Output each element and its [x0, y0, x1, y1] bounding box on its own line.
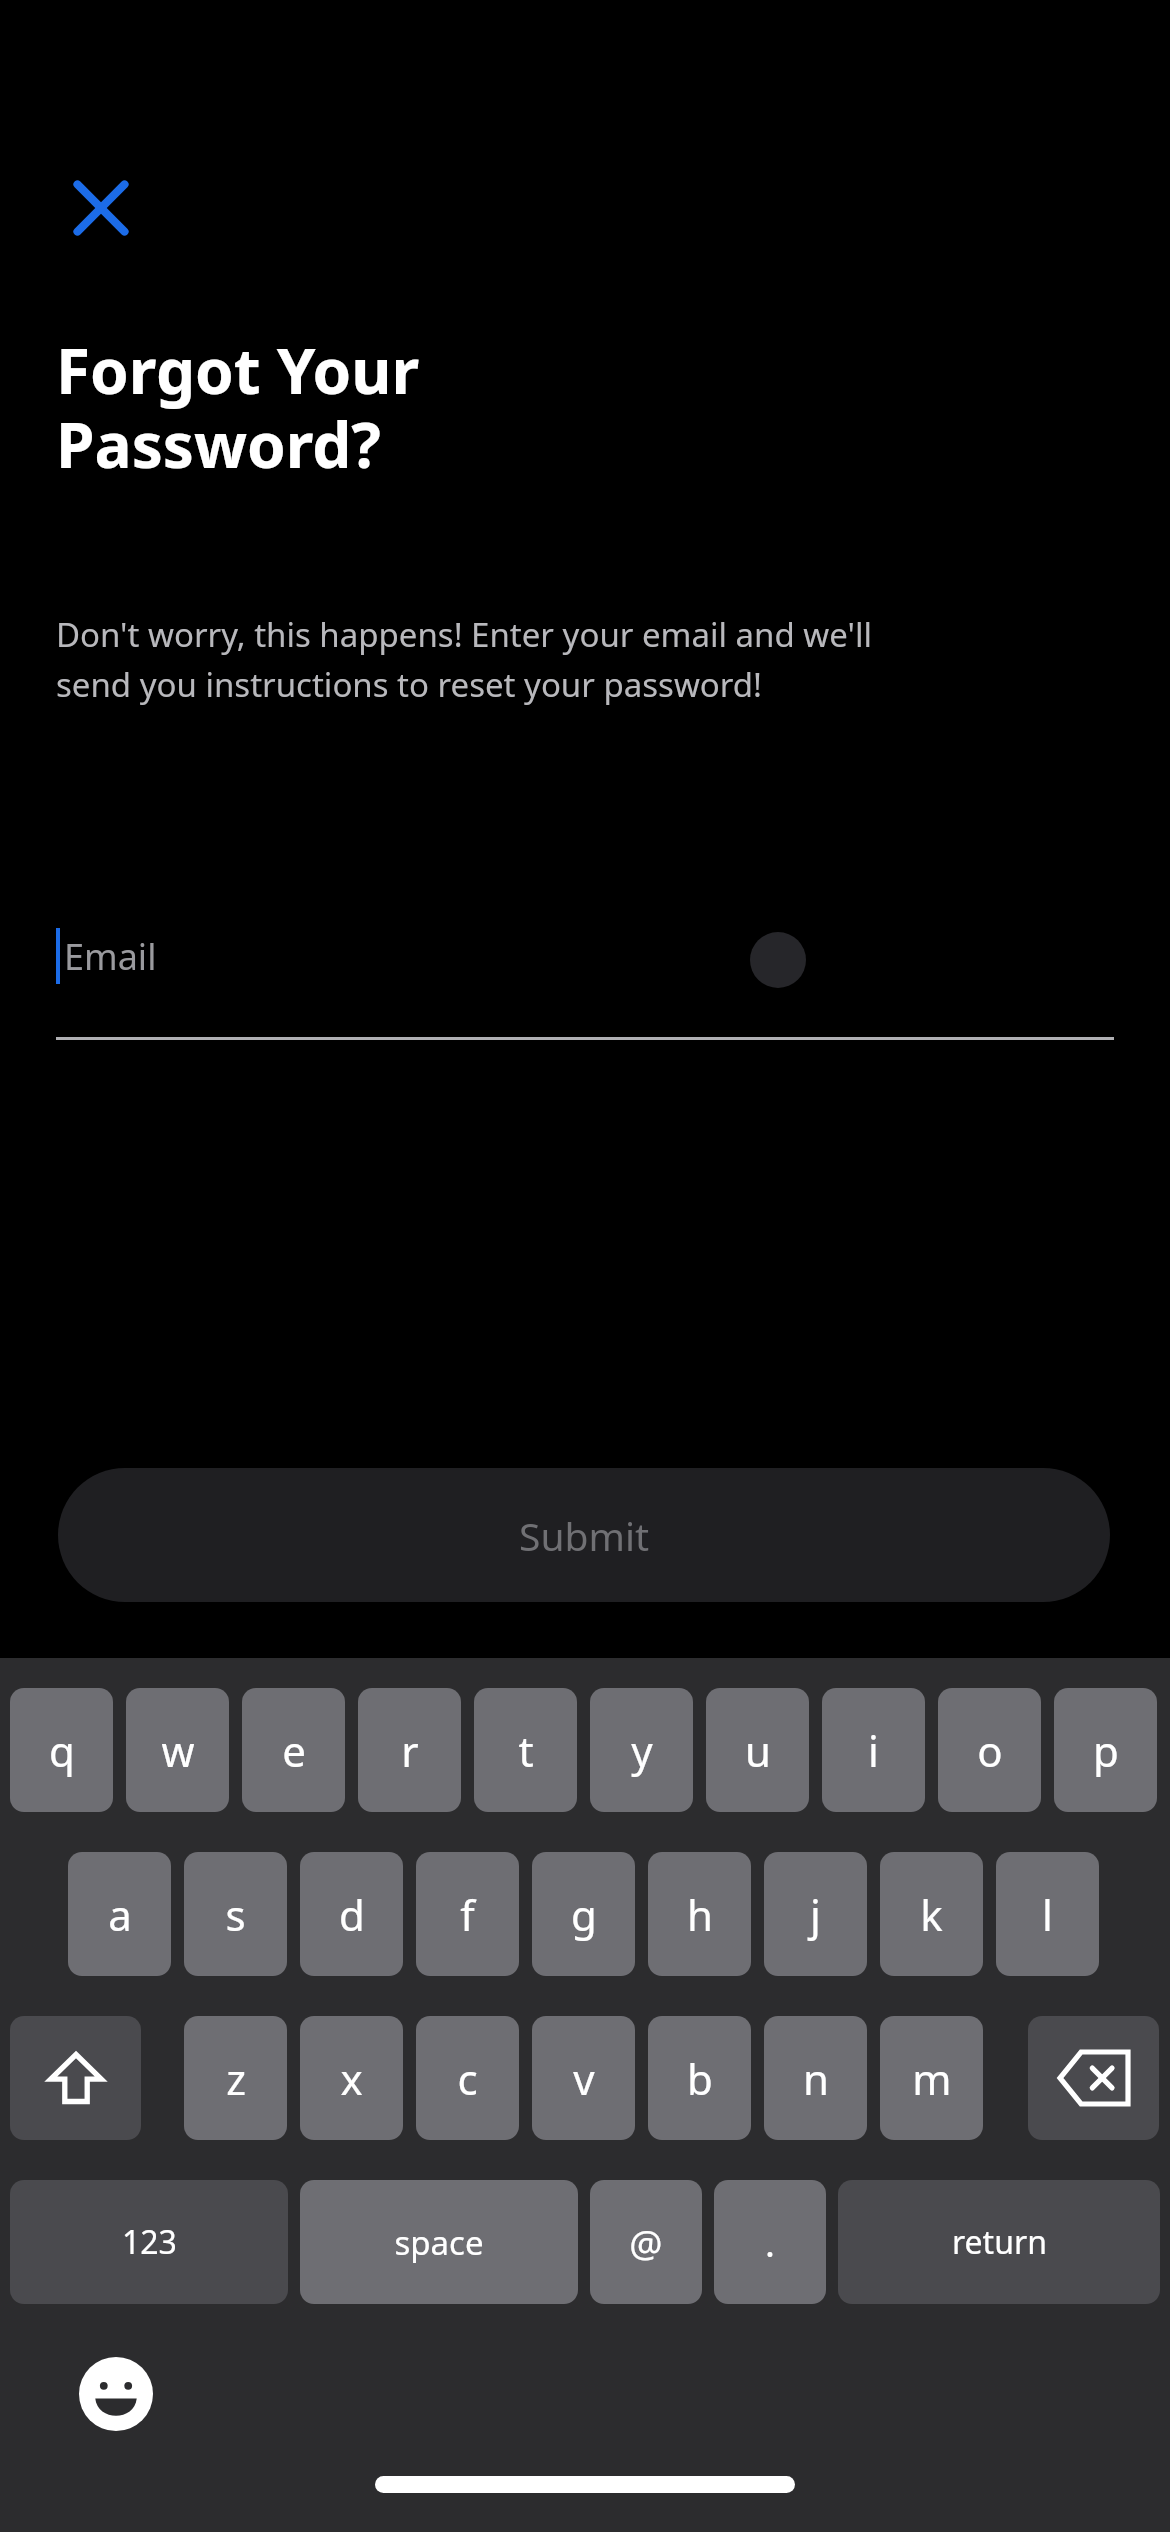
staticText: z — [226, 2050, 246, 2107]
button[interactable]: w — [126, 1688, 229, 1812]
staticText: u — [745, 1722, 771, 1779]
staticText: Submit — [519, 1509, 650, 1562]
staticText: v — [573, 2050, 595, 2107]
staticText: o — [977, 1722, 1003, 1779]
button[interactable]: f — [416, 1852, 519, 1976]
button[interactable]: b — [648, 2016, 751, 2140]
button[interactable]: c — [416, 2016, 519, 2140]
button[interactable]: j — [764, 1852, 867, 1976]
staticText: j — [810, 1886, 821, 1943]
button[interactable]: 123 — [10, 2180, 288, 2304]
button[interactable]: . — [714, 2180, 826, 2304]
staticText: t — [518, 1722, 534, 1779]
staticText: n — [803, 2050, 829, 2107]
staticText: 123 — [122, 2220, 177, 2264]
button[interactable]: p — [1054, 1688, 1157, 1812]
staticText: x — [340, 2050, 363, 2107]
button[interactable]: return — [838, 2180, 1160, 2304]
button[interactable]: @ — [590, 2180, 702, 2304]
staticText: Forgot Your Password? — [56, 328, 420, 486]
staticText: h — [687, 1886, 713, 1943]
staticText: w — [161, 1722, 195, 1779]
button[interactable]: y — [590, 1688, 693, 1812]
button[interactable]: x — [300, 2016, 403, 2140]
button[interactable]: z — [184, 2016, 287, 2140]
staticText: return — [952, 2220, 1047, 2264]
button[interactable]: Shift — [10, 2016, 141, 2140]
staticText: y — [631, 1722, 653, 1779]
staticText: Don't worry, this happens! Enter your em… — [56, 612, 946, 707]
button[interactable]: v — [532, 2016, 635, 2140]
button[interactable]: a — [68, 1852, 171, 1976]
button[interactable]: h — [648, 1852, 751, 1976]
staticText: b — [687, 2050, 713, 2107]
staticText: @ — [629, 2217, 663, 2267]
staticText: g — [571, 1886, 597, 1943]
staticText: i — [868, 1722, 879, 1779]
staticText: d — [339, 1886, 365, 1943]
button[interactable]: u — [706, 1688, 809, 1812]
button[interactable]: t — [474, 1688, 577, 1812]
button[interactable]: Email — [56, 900, 1114, 1040]
staticText: Email — [64, 932, 157, 981]
staticText: q — [49, 1722, 75, 1779]
button[interactable]: e — [242, 1688, 345, 1812]
button[interactable]: i — [822, 1688, 925, 1812]
staticText: e — [282, 1722, 306, 1779]
button[interactable]: Close — [58, 165, 144, 251]
button[interactable]: g — [532, 1852, 635, 1976]
staticText: space — [394, 2220, 484, 2265]
button[interactable]: o — [938, 1688, 1041, 1812]
button[interactable]: s — [184, 1852, 287, 1976]
button[interactable]: space — [300, 2180, 578, 2304]
button[interactable]: Backspace — [1028, 2016, 1159, 2140]
staticText: . — [765, 2217, 775, 2267]
staticText: c — [457, 2050, 478, 2107]
button[interactable]: m — [880, 2016, 983, 2140]
button[interactable]: q — [10, 1688, 113, 1812]
staticText: l — [1042, 1886, 1053, 1943]
staticText: k — [920, 1886, 943, 1943]
staticText: a — [108, 1886, 132, 1943]
button[interactable]: l — [996, 1852, 1099, 1976]
staticText: f — [460, 1886, 475, 1943]
button[interactable]: n — [764, 2016, 867, 2140]
staticText: s — [225, 1886, 246, 1943]
staticText: r — [401, 1722, 419, 1779]
button[interactable]: Emoji keyboard — [70, 2348, 162, 2440]
button[interactable]: k — [880, 1852, 983, 1976]
button[interactable]: Submit — [58, 1468, 1110, 1602]
button[interactable]: r — [358, 1688, 461, 1812]
staticText: m — [912, 2050, 952, 2107]
button[interactable]: d — [300, 1852, 403, 1976]
button[interactable]: Clear text — [750, 932, 806, 988]
staticText: p — [1093, 1722, 1119, 1779]
